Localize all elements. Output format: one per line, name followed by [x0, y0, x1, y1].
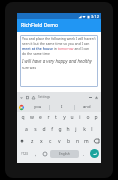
- button[interactable]: b: [64, 135, 73, 147]
- staticText: d: [42, 126, 46, 133]
- button[interactable]: Clipboard: [24, 93, 30, 102]
- button[interactable]: Expand toolbar: [18, 93, 24, 102]
- staticText: s: [34, 126, 37, 133]
- staticText: ,: [35, 151, 37, 157]
- button[interactable]: i: [76, 112, 84, 123]
- staticText: RichField Demo: [21, 22, 59, 29]
- button[interactable]: t: [52, 112, 60, 123]
- button[interactable]: RichField Demo: [17, 19, 101, 32]
- staticText: .: [83, 151, 85, 157]
- button[interactable]: ?123: [17, 147, 31, 160]
- button[interactable]: k: [80, 123, 88, 135]
- button[interactable]: u: [68, 112, 76, 123]
- button[interactable]: you: [26, 102, 49, 112]
- staticText: e: [39, 114, 42, 121]
- button[interactable]: q: [18, 112, 27, 123]
- staticText: n: [76, 138, 80, 145]
- staticText: j: [75, 126, 77, 133]
- staticText: f: [51, 126, 53, 133]
- staticText: I will have a very happy and healthy: [22, 58, 92, 64]
- button[interactable]: a: [22, 123, 31, 135]
- button[interactable]: h: [64, 123, 72, 135]
- staticText: i: [79, 114, 81, 121]
- staticText: k: [83, 126, 86, 133]
- staticText: w: [30, 114, 34, 121]
- button[interactable]: Enter: [87, 147, 101, 160]
- button[interactable]: p: [92, 112, 100, 123]
- staticText: x: [40, 138, 43, 145]
- button[interactable]: s: [31, 123, 40, 135]
- staticText: a: [25, 126, 28, 133]
- staticText: and: [83, 104, 91, 110]
- button[interactable]: .: [80, 147, 87, 160]
- button[interactable]: and: [75, 102, 99, 112]
- staticText: English: [59, 152, 70, 156]
- staticText: b: [67, 138, 71, 145]
- staticText: You and place the following week I will …: [22, 36, 96, 56]
- staticText: you: [34, 104, 42, 110]
- button[interactable]: Shift: [17, 135, 27, 147]
- button[interactable]: o: [84, 112, 92, 123]
- staticText: q: [21, 114, 25, 121]
- button[interactable]: I: [50, 102, 74, 112]
- button[interactable]: y: [60, 112, 68, 123]
- staticText: ?123: [21, 152, 28, 156]
- staticText: Settings: [38, 95, 51, 99]
- staticText: o: [86, 114, 90, 121]
- staticText: p: [94, 114, 98, 121]
- button[interactable]: w: [27, 112, 36, 123]
- staticText: v: [58, 138, 61, 145]
- button[interactable]: r: [44, 112, 52, 123]
- button[interactable]: m: [82, 135, 91, 147]
- button[interactable]: Voice input: [93, 93, 100, 102]
- staticText: g: [58, 126, 62, 133]
- button[interactable]: j: [72, 123, 80, 135]
- button[interactable]: c: [46, 135, 55, 147]
- button[interactable]: Settings: [38, 95, 51, 99]
- staticText: m: [84, 138, 89, 145]
- staticText: I: [61, 104, 63, 110]
- button[interactable]: ,: [31, 147, 40, 160]
- staticText: u: [70, 114, 74, 121]
- button[interactable]: n: [73, 135, 82, 147]
- button[interactable]: You and place the following week I will …: [22, 36, 96, 86]
- staticText: sure was: [22, 65, 37, 70]
- button[interactable]: f: [48, 123, 56, 135]
- button[interactable]: English: [50, 150, 79, 158]
- staticText: y: [63, 114, 66, 121]
- staticText: l: [91, 126, 93, 133]
- button[interactable]: g: [56, 123, 64, 135]
- button[interactable]: Emoji: [40, 147, 49, 160]
- button[interactable]: e: [36, 112, 44, 123]
- button[interactable]: l: [88, 123, 96, 135]
- staticText: 3:12: [91, 14, 99, 19]
- staticText: z: [31, 138, 34, 145]
- button[interactable]: v: [55, 135, 64, 147]
- staticText: h: [66, 126, 70, 133]
- button[interactable]: Google search: [17, 102, 26, 112]
- button[interactable]: z: [27, 135, 37, 147]
- staticText: t: [55, 114, 57, 121]
- staticText: r: [47, 114, 50, 121]
- button[interactable]: d: [40, 123, 48, 135]
- staticText: c: [49, 138, 52, 145]
- button[interactable]: Mic: [87, 93, 93, 102]
- button[interactable]: x: [37, 135, 46, 147]
- button[interactable]: Backspace: [91, 135, 101, 147]
- button[interactable]: Translate: [30, 93, 36, 102]
